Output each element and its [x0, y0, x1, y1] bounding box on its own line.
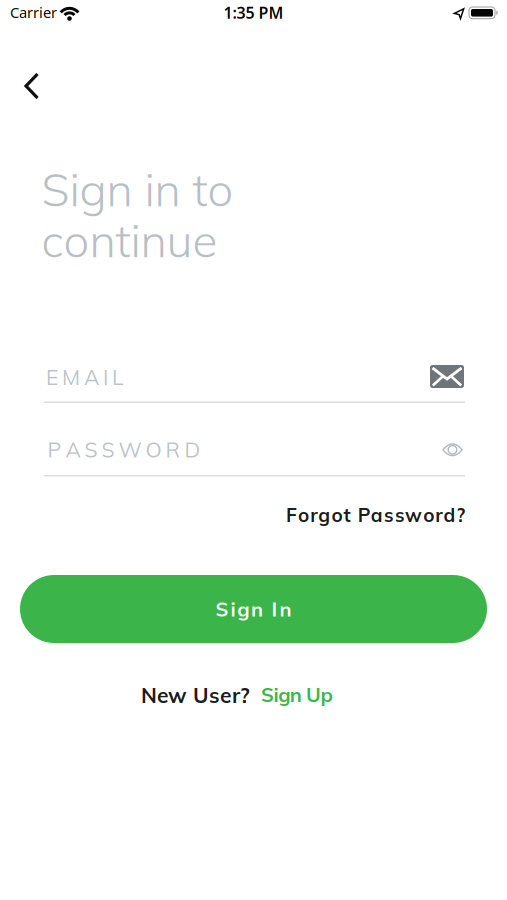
button[interactable]: Back — [10, 64, 54, 108]
button[interactable]: Sign In — [20, 575, 487, 643]
staticText: continue — [41, 211, 217, 269]
staticText: Forgot Password? — [286, 503, 465, 527]
staticText: Sign Up — [261, 682, 333, 707]
staticText: 1:35 PM — [223, 2, 283, 23]
staticText: New User? — [141, 682, 250, 708]
staticText: Sign In — [216, 596, 291, 622]
staticText: E M A I L — [46, 364, 123, 390]
button[interactable]: Forgot Password? — [286, 503, 465, 527]
staticText: Sign in to — [41, 160, 233, 218]
staticText: P A S S W O R D — [47, 436, 200, 463]
staticText: Carrier — [10, 2, 57, 22]
button[interactable]: Sign Up — [261, 682, 333, 707]
button[interactable]: Show password — [436, 436, 469, 464]
